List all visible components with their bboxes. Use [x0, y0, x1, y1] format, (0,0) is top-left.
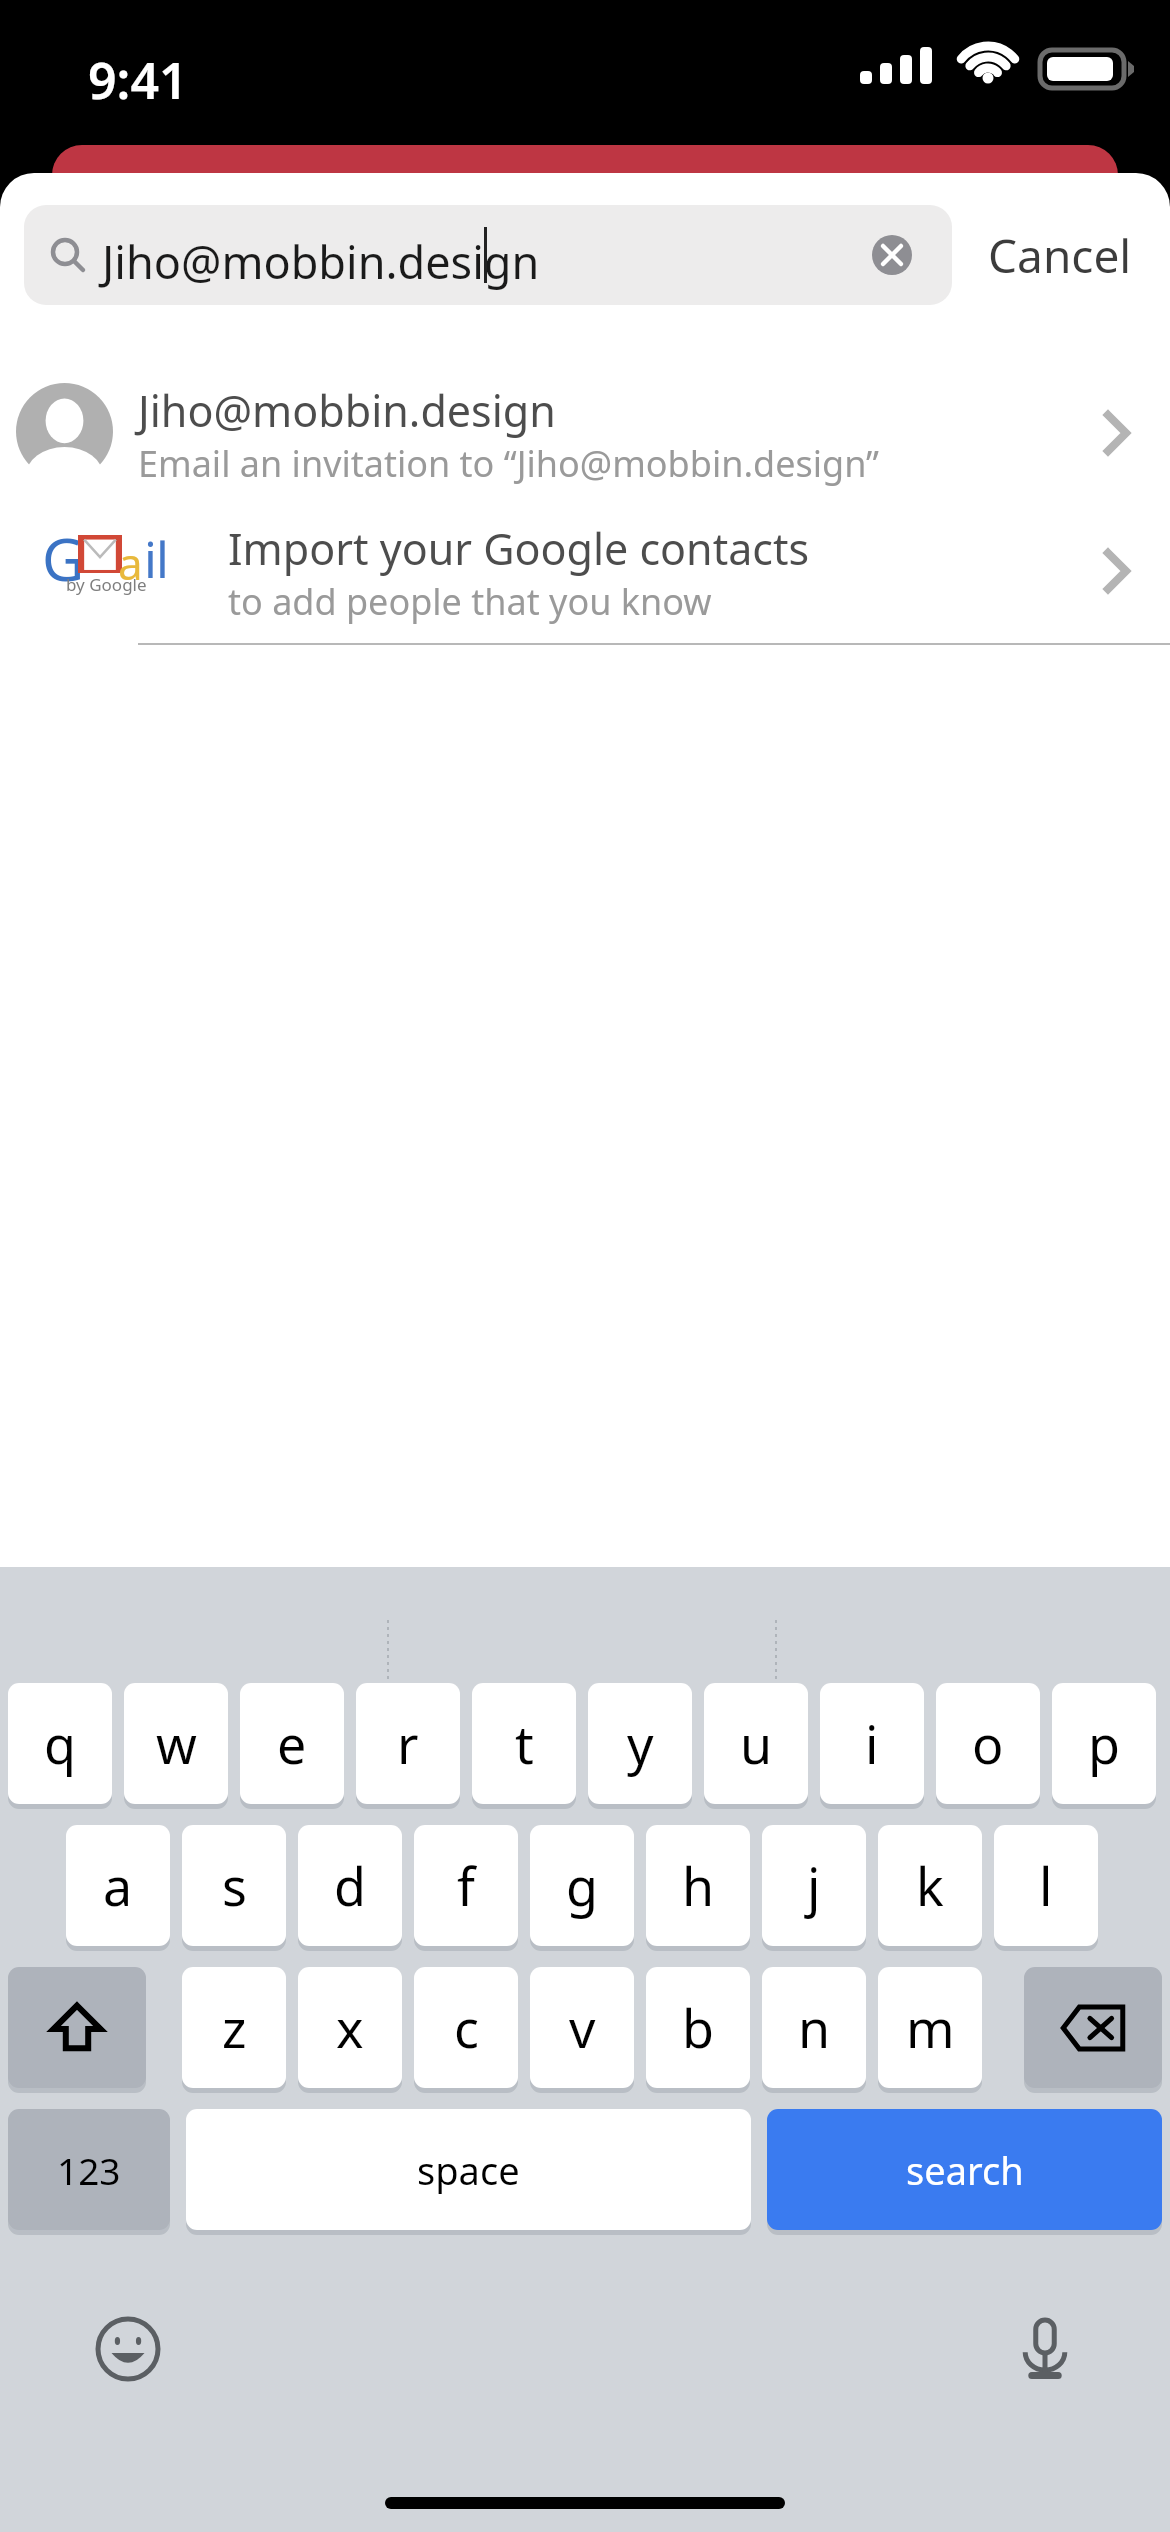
button[interactable]: f — [414, 1825, 518, 1951]
button[interactable]: z — [182, 1967, 286, 2093]
staticText: i — [865, 1708, 879, 1779]
button[interactable]: Jiho@mobbin.design — [24, 205, 952, 305]
staticText: a — [118, 533, 143, 593]
button[interactable]: search — [767, 2109, 1162, 2235]
staticText: 9:41 — [88, 46, 188, 114]
button[interactable]: q — [8, 1683, 112, 1809]
staticText: t — [515, 1708, 534, 1779]
staticText: Jiho@mobbin.design — [102, 231, 540, 292]
staticText: n — [798, 1992, 831, 2063]
staticText: 123 — [57, 2145, 121, 2195]
staticText: m — [906, 1992, 955, 2063]
button[interactable]: 123 — [8, 2109, 170, 2235]
button[interactable]: l — [994, 1825, 1098, 1951]
button[interactable]: Backspace — [1024, 1967, 1162, 2093]
button[interactable]: s — [182, 1825, 286, 1951]
button[interactable]: Jiho@mobbin.design — [0, 361, 1170, 503]
button[interactable]: Cancel — [988, 205, 1153, 305]
staticText: u — [740, 1708, 773, 1779]
button[interactable]: Shift — [8, 1967, 146, 2093]
button[interactable]: h — [646, 1825, 750, 1951]
button[interactable]: b — [646, 1967, 750, 2093]
button[interactable]: n — [762, 1967, 866, 2093]
staticText: q — [44, 1708, 76, 1779]
staticText: j — [807, 1850, 821, 1921]
staticText: d — [334, 1850, 366, 1921]
staticText: y — [627, 1708, 654, 1779]
button[interactable]: u — [704, 1683, 808, 1809]
button[interactable]: a — [66, 1825, 170, 1951]
staticText: e — [277, 1708, 307, 1779]
staticText: Jiho@mobbin.design — [138, 381, 556, 440]
button[interactable]: j — [762, 1825, 866, 1951]
button[interactable]: o — [936, 1683, 1040, 1809]
staticText: v — [569, 1992, 596, 2063]
staticText: G — [42, 519, 85, 591]
button[interactable]: r — [356, 1683, 460, 1809]
button[interactable]: Emoji keyboard — [78, 2299, 178, 2399]
staticText: i — [144, 525, 157, 593]
button[interactable]: Clear text — [872, 235, 912, 275]
staticText: h — [682, 1850, 715, 1921]
button[interactable]: e — [240, 1683, 344, 1809]
button[interactable]: p — [1052, 1683, 1156, 1809]
staticText: x — [336, 1992, 364, 2063]
button[interactable]: d — [298, 1825, 402, 1951]
button[interactable]: v — [530, 1967, 634, 2093]
button[interactable]: space — [186, 2109, 751, 2235]
staticText: c — [454, 1992, 479, 2063]
staticText: l — [156, 525, 169, 593]
staticText: z — [222, 1992, 247, 2063]
button[interactable]: Voice input — [995, 2299, 1095, 2399]
button[interactable]: G — [0, 503, 1170, 643]
staticText: to add people that you know — [228, 577, 712, 626]
staticText: p — [1088, 1708, 1120, 1779]
staticText: k — [916, 1850, 944, 1921]
staticText: f — [457, 1850, 475, 1921]
staticText: space — [417, 2144, 520, 2196]
staticText: l — [1039, 1850, 1053, 1921]
button[interactable]: k — [878, 1825, 982, 1951]
staticText: a — [103, 1850, 133, 1921]
button[interactable]: m — [878, 1967, 982, 2093]
staticText: w — [156, 1708, 197, 1779]
staticText: r — [397, 1708, 419, 1779]
staticText: Cancel — [988, 224, 1132, 287]
button[interactable]: x — [298, 1967, 402, 2093]
button[interactable]: w — [124, 1683, 228, 1809]
button[interactable]: y — [588, 1683, 692, 1809]
button[interactable]: g — [530, 1825, 634, 1951]
button[interactable]: i — [820, 1683, 924, 1809]
staticText: Email an invitation to “Jiho@mobbin.desi… — [138, 439, 879, 488]
staticText: Import your Google contacts — [228, 519, 810, 578]
button[interactable]: c — [414, 1967, 518, 2093]
staticText: search — [906, 2144, 1024, 2196]
staticText: o — [972, 1708, 1004, 1779]
staticText: g — [566, 1850, 598, 1921]
button[interactable]: t — [472, 1683, 576, 1809]
staticText: s — [222, 1850, 247, 1921]
staticText: by Google — [66, 573, 147, 596]
staticText: b — [682, 1992, 714, 2063]
